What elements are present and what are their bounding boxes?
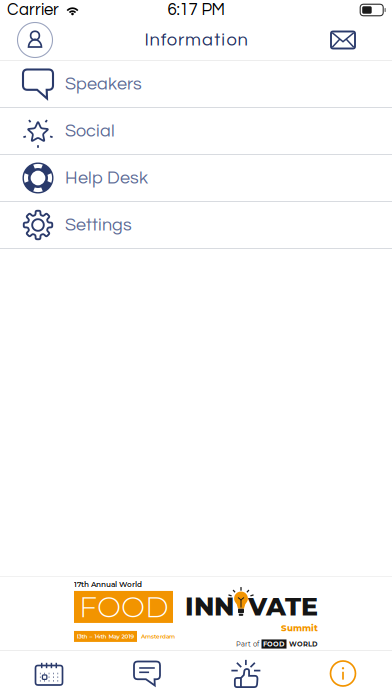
staticText: Information [144,30,247,49]
staticText: 6:17 PM [167,1,224,19]
button[interactable]: Speakers [0,61,392,108]
staticText: Amsterdam [141,633,175,640]
staticText: Carrier [7,1,59,19]
button[interactable]: Help Desk [0,155,392,202]
staticText: Speakers [65,75,142,93]
staticText: Summit [281,623,318,633]
button[interactable]: Information [294,651,392,696]
button[interactable]: Profile [13,20,57,60]
staticText: 13th – 14th May 2019 [76,633,134,640]
staticText: VATE [248,591,318,622]
staticText: 17th Annual World [74,580,142,589]
button[interactable]: Messages [98,651,196,696]
staticText: Help Desk [65,169,148,187]
button[interactable]: Settings [0,202,392,249]
staticText: Part of [236,640,259,648]
staticText: Social [65,122,115,140]
staticText: INN [185,591,234,622]
staticText: FOOD [79,589,169,624]
staticText: WORLD [289,640,318,648]
staticText: FOOD [263,640,285,648]
button[interactable]: Agenda [0,651,98,696]
button[interactable]: Social [0,108,392,155]
button[interactable]: Messages [321,20,365,60]
button[interactable]: Feedback [196,651,294,696]
staticText: Settings [65,216,132,234]
